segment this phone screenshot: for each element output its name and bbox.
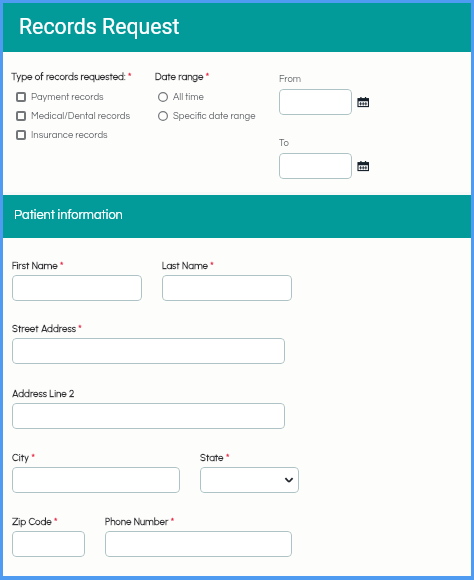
staticText: City * — [12, 452, 35, 464]
button[interactable] — [12, 403, 285, 429]
button[interactable]: Insurance records — [16, 125, 108, 144]
button[interactable]: Records Request — [3, 3, 471, 52]
button[interactable]: Payment records — [16, 87, 104, 106]
staticText: To — [279, 138, 289, 148]
staticText: Records Request — [19, 14, 180, 39]
staticText: Street Address * — [12, 323, 82, 335]
button[interactable] — [105, 531, 292, 557]
staticText: First Name * — [12, 260, 64, 272]
staticText: Type of records requested: * — [11, 71, 132, 83]
button[interactable]: Patient information — [3, 195, 471, 238]
button[interactable] — [279, 153, 352, 179]
staticText: Phone Number * — [105, 516, 175, 528]
button[interactable]: Choose date — [358, 161, 369, 172]
button[interactable] — [12, 531, 85, 557]
button[interactable]: Open state list — [200, 467, 299, 493]
staticText: Last Name * — [162, 260, 214, 272]
staticText: Medical/Dental records — [31, 111, 131, 121]
staticText: Zip Code * — [12, 516, 58, 528]
staticText: From — [279, 74, 302, 84]
button[interactable] — [12, 467, 180, 493]
staticText: Payment records — [31, 92, 104, 102]
staticText: Patient information — [14, 209, 123, 222]
staticText: Specific date range — [173, 111, 256, 121]
button[interactable]: All time — [158, 87, 204, 106]
button[interactable]: Choose date — [358, 97, 369, 108]
button[interactable] — [12, 275, 142, 301]
staticText: All time — [173, 92, 204, 102]
staticText: State * — [200, 452, 230, 464]
other: Open state list — [283, 474, 295, 486]
button[interactable] — [12, 338, 285, 364]
button[interactable] — [279, 89, 352, 115]
button[interactable]: Medical/Dental records — [16, 106, 131, 125]
staticText: Insurance records — [31, 130, 108, 140]
staticText: Address Line 2 — [12, 388, 75, 400]
button[interactable] — [162, 275, 292, 301]
staticText: Date range * — [155, 71, 210, 83]
button[interactable]: Specific date range — [158, 106, 256, 125]
